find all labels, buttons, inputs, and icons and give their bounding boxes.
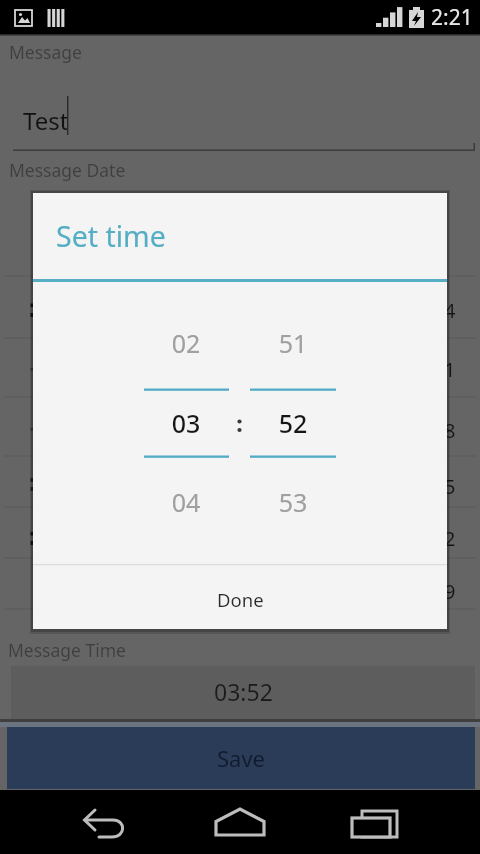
staticText: Message Time xyxy=(8,638,126,662)
staticText: Save xyxy=(217,743,266,773)
staticText: 9 xyxy=(444,578,456,605)
button[interactable]: Done xyxy=(33,566,447,629)
staticText: 2 xyxy=(444,525,456,552)
staticText: 52 xyxy=(259,406,327,440)
staticText: 02 xyxy=(152,326,220,360)
button[interactable]: Recent apps xyxy=(335,790,415,854)
staticText: 5 xyxy=(444,473,456,500)
staticText: Message Date xyxy=(9,158,126,182)
staticText: 53 xyxy=(259,485,327,519)
button[interactable]: 04 xyxy=(152,484,220,520)
button[interactable]: Save xyxy=(7,727,475,789)
staticText: 03:52 xyxy=(214,676,273,707)
staticText: Done xyxy=(217,587,264,612)
button[interactable]: 03 xyxy=(152,405,220,441)
button[interactable]: 51 xyxy=(259,325,327,361)
staticText: 04 xyxy=(152,485,220,519)
staticText: Set time xyxy=(56,217,166,256)
button[interactable]: 03:52 xyxy=(11,666,475,719)
button[interactable]: Home xyxy=(200,790,280,854)
staticText: 4 xyxy=(444,297,456,324)
staticText: 1 xyxy=(444,356,456,383)
button[interactable]: 52 xyxy=(259,405,327,441)
button[interactable]: 53 xyxy=(259,484,327,520)
staticText: 03 xyxy=(152,406,220,440)
button[interactable]: Back xyxy=(66,790,146,854)
staticText: 8 xyxy=(444,417,456,444)
button[interactable]: 02 xyxy=(152,325,220,361)
staticText: Test xyxy=(23,104,69,137)
staticText: Message xyxy=(9,40,82,64)
staticText: 2:21 xyxy=(431,3,473,32)
staticText: 51 xyxy=(259,326,327,360)
